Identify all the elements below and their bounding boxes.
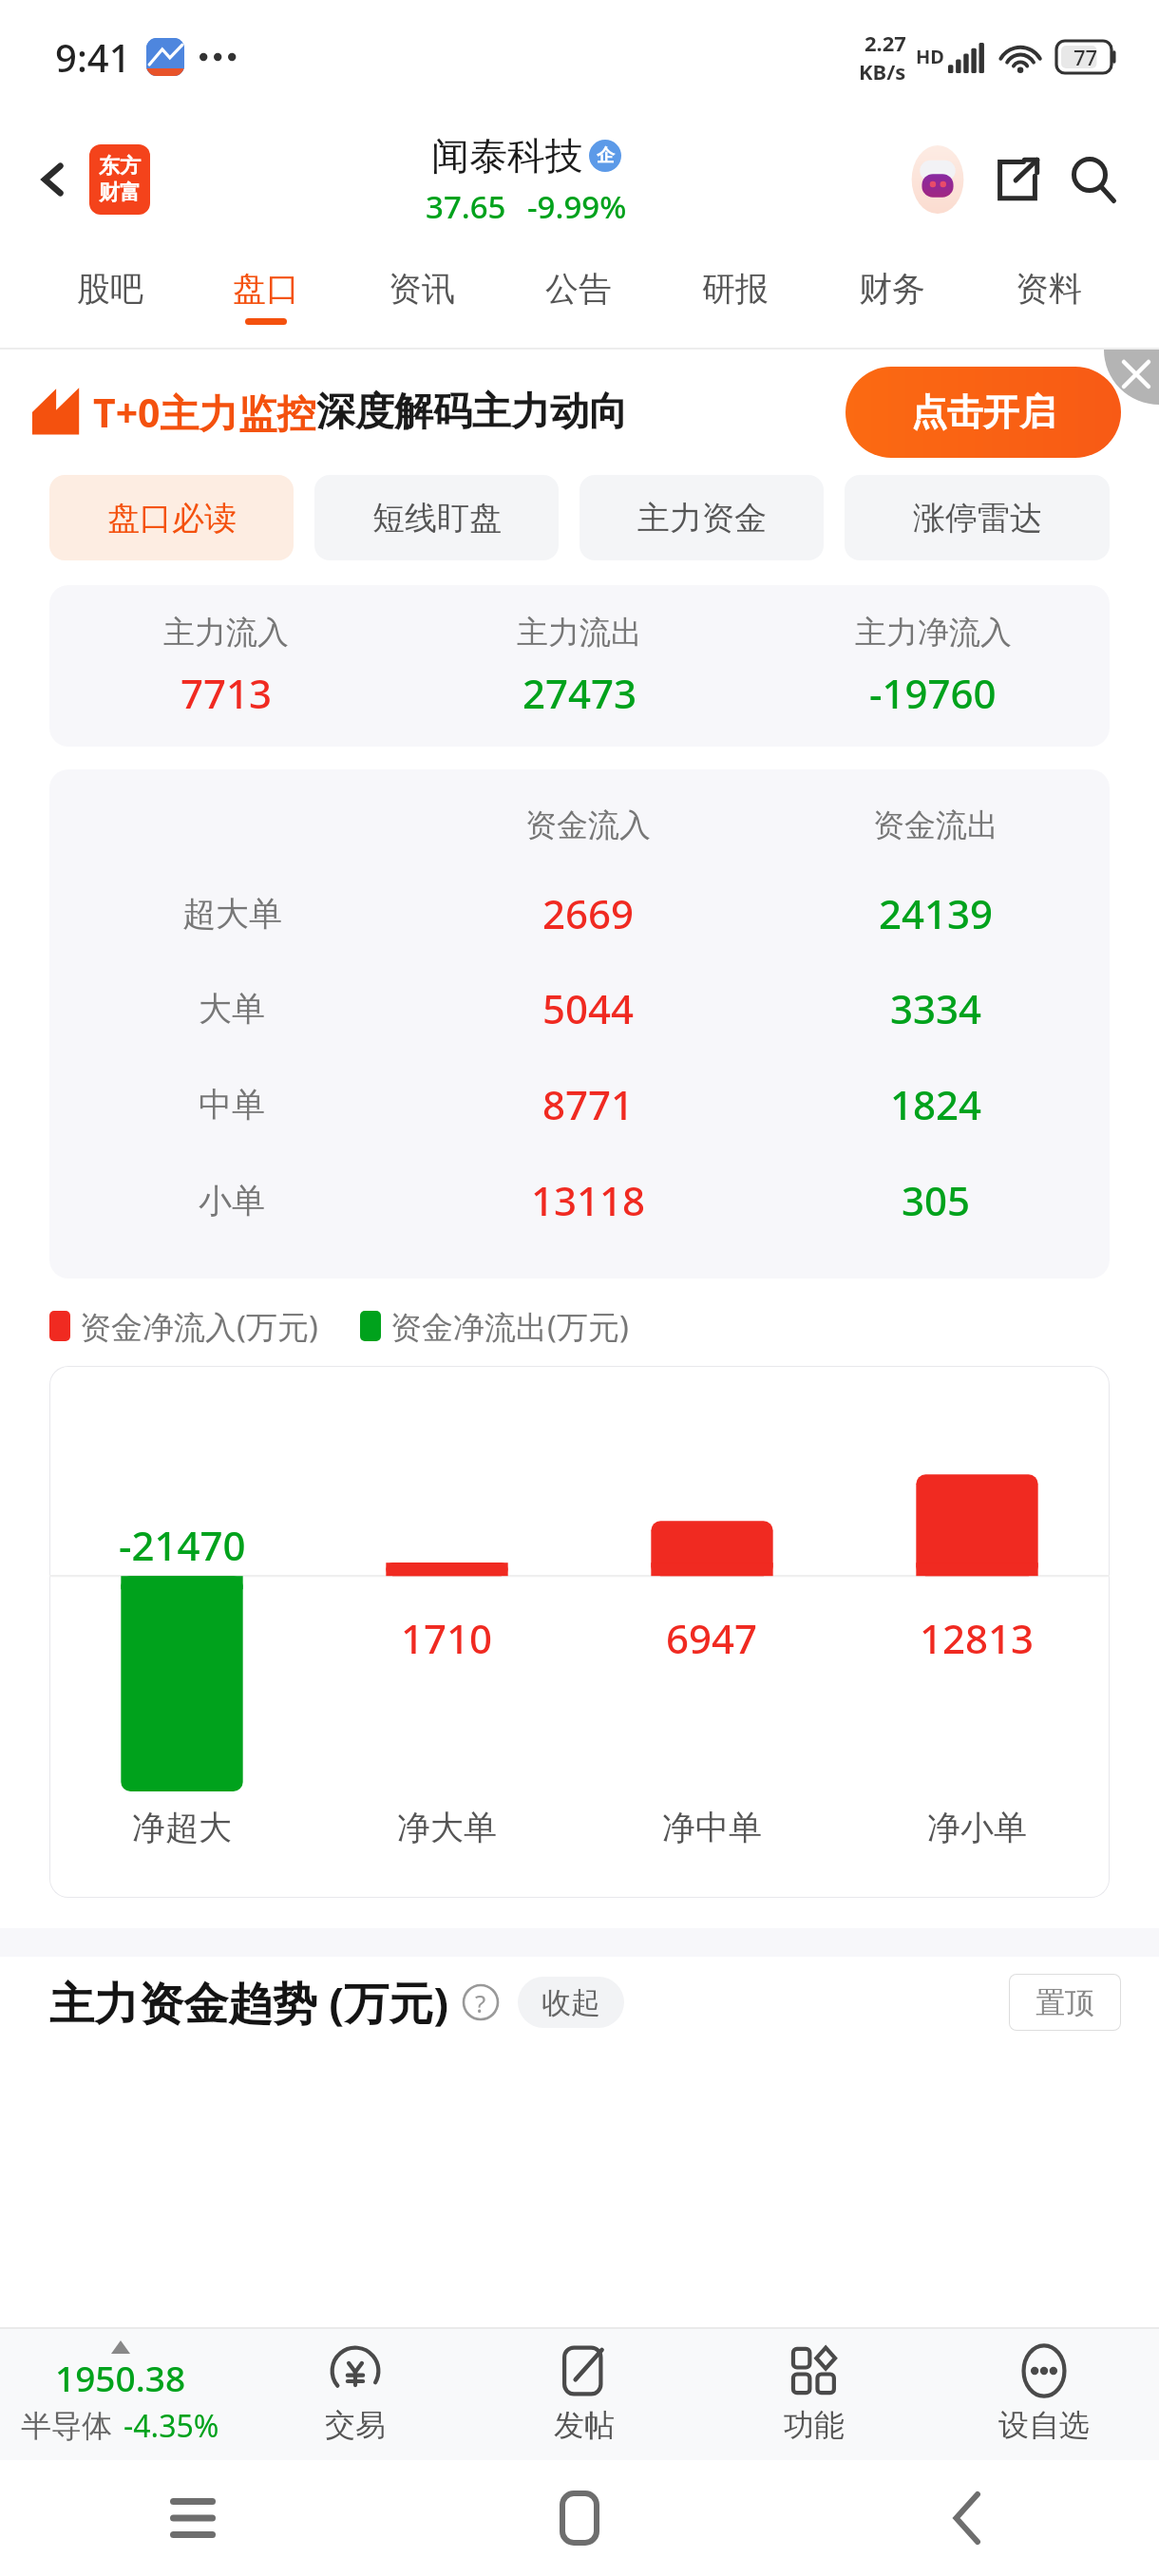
- button[interactable]: 设自选: [929, 2327, 1159, 2460]
- button[interactable]: 盘口必读: [49, 475, 294, 560]
- staticText: 净超大: [132, 1807, 232, 1848]
- staticText: 闻泰科技: [431, 132, 583, 180]
- staticText: 2669: [414, 886, 762, 940]
- staticText: HD: [916, 44, 944, 69]
- button[interactable]: 公告: [500, 245, 656, 348]
- staticText: 点击开启: [911, 389, 1055, 435]
- staticText: 收起: [541, 1984, 600, 2021]
- button[interactable]: 资金流入: [49, 769, 1110, 1279]
- staticText: 置顶: [1035, 1984, 1094, 2021]
- button[interactable]: Back: [23, 149, 84, 210]
- staticText: 财务: [859, 268, 925, 310]
- button[interactable]: 东方财富: [89, 144, 150, 215]
- button[interactable]: 收起: [518, 1977, 624, 2028]
- staticText: 77: [1073, 43, 1098, 71]
- button[interactable]: 短线盯盘: [314, 475, 559, 560]
- button[interactable]: 盘口: [188, 245, 344, 348]
- staticText: 27473: [522, 666, 637, 720]
- staticText: 涨停雷达: [913, 498, 1042, 539]
- button[interactable]: 资料: [970, 245, 1127, 348]
- staticText: 深度解码主力动向: [316, 388, 628, 437]
- staticText: 大单: [199, 988, 265, 1030]
- staticText: 8771: [414, 1077, 762, 1131]
- staticText: -19760: [869, 666, 997, 720]
- staticText: 24139: [762, 886, 1110, 940]
- staticText: 资金净流入(万元): [80, 1305, 318, 1348]
- staticText: 超大单: [182, 893, 282, 935]
- staticText: 1710: [401, 1611, 493, 1665]
- button[interactable]: 说明: [461, 1982, 501, 2022]
- staticText: 2.27: [864, 28, 906, 57]
- staticText: 股吧: [77, 268, 143, 310]
- button[interactable]: 主力流入: [49, 585, 1110, 747]
- staticText: 主力流入: [163, 613, 289, 653]
- button[interactable]: AI助手: [902, 144, 973, 215]
- button[interactable]: 研报: [656, 245, 813, 348]
- staticText: 6947: [666, 1611, 758, 1665]
- staticText: 净中单: [662, 1807, 762, 1848]
- staticText: 设自选: [998, 2406, 1090, 2444]
- staticText: 5044: [414, 981, 762, 1035]
- staticText: 9:41: [55, 31, 131, 83]
- staticText: 公告: [545, 268, 612, 310]
- staticText: 功能: [784, 2406, 845, 2444]
- staticText: 半导体: [21, 2407, 112, 2445]
- staticText: 盘口必读: [107, 498, 237, 539]
- staticText: 盘口: [233, 268, 299, 310]
- staticText: 发帖: [554, 2406, 615, 2444]
- button[interactable]: 搜索: [1062, 148, 1125, 211]
- staticText: -21470: [119, 1518, 246, 1572]
- staticText: KB/s: [859, 57, 906, 85]
- staticText: 净大单: [397, 1807, 497, 1848]
- staticText: 净小单: [927, 1807, 1027, 1848]
- staticText: 主力净流入: [855, 613, 1012, 653]
- button[interactable]: 股吧: [32, 245, 188, 348]
- staticText: 中单: [199, 1084, 265, 1126]
- staticText: 资讯: [389, 268, 455, 310]
- staticText: 资金净流出(万元): [390, 1305, 629, 1348]
- staticText: 东方: [99, 153, 141, 180]
- button[interactable]: 主力资金: [579, 475, 824, 560]
- button[interactable]: 涨停雷达: [845, 475, 1110, 560]
- staticText: 13118: [414, 1173, 762, 1227]
- staticText: 研报: [702, 268, 769, 310]
- staticText: 交易: [325, 2406, 386, 2444]
- button[interactable]: 置顶: [1009, 1974, 1121, 2031]
- button[interactable]: 点击开启: [845, 367, 1121, 458]
- button[interactable]: 发帖: [469, 2327, 699, 2460]
- staticText: 7713: [180, 666, 273, 720]
- staticText: 财富: [99, 180, 141, 206]
- staticText: 主力流出: [517, 613, 642, 653]
- button[interactable]: -21470: [49, 1366, 1110, 1898]
- staticText: 3334: [762, 981, 1110, 1035]
- button[interactable]: 资讯: [344, 245, 500, 348]
- staticText: -4.35%: [123, 2405, 219, 2447]
- button[interactable]: 财务: [813, 245, 970, 348]
- staticText: 1824: [762, 1077, 1110, 1131]
- staticText: 305: [762, 1173, 1110, 1227]
- staticText: 37.65: [426, 185, 506, 228]
- button[interactable]: 关闭: [1104, 350, 1159, 405]
- staticText: T+0主力监控: [93, 386, 316, 439]
- staticText: -9.99%: [527, 185, 627, 228]
- staticText: 1950.38: [55, 2354, 186, 2401]
- staticText: 资金流入: [414, 805, 762, 845]
- button[interactable]: 交易: [240, 2327, 469, 2460]
- staticText: 主力资金趋势 (万元): [49, 1972, 449, 2033]
- staticText: 小单: [199, 1180, 265, 1222]
- button[interactable]: 功能: [699, 2327, 929, 2460]
- staticText: 短线盯盘: [372, 498, 502, 539]
- staticText: 资金流出: [762, 805, 1110, 845]
- staticText: 资料: [1016, 268, 1082, 310]
- staticText: 主力资金: [637, 498, 767, 539]
- staticText: 12813: [920, 1611, 1035, 1665]
- staticText: ?: [475, 1986, 486, 2019]
- staticText: 企: [597, 144, 615, 167]
- button[interactable]: 1950.38: [0, 2327, 240, 2460]
- button[interactable]: 分享: [986, 148, 1049, 211]
